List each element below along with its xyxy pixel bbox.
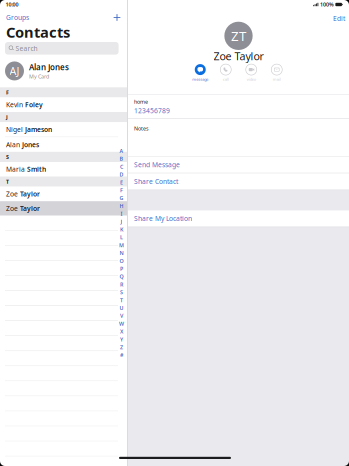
staticText: AJ <box>9 64 19 78</box>
staticText: U <box>119 304 123 311</box>
staticText: Alan <box>6 140 22 149</box>
button[interactable]: Maria <box>0 162 127 176</box>
staticText: G <box>119 194 123 202</box>
staticText: O <box>119 257 123 264</box>
button[interactable]: Alan <box>0 137 127 152</box>
staticText: Taylor <box>20 189 40 198</box>
staticText: Share Contact <box>134 177 178 186</box>
staticText: Maria <box>6 165 27 174</box>
staticText: call <box>223 77 229 82</box>
button[interactable]: Zoe <box>0 201 127 216</box>
staticText: Nigel <box>6 125 25 134</box>
staticText: M <box>119 242 124 249</box>
staticText: L <box>120 234 123 241</box>
staticText: B <box>119 155 123 162</box>
staticText: E <box>120 179 123 186</box>
staticText: message <box>192 77 208 82</box>
staticText: Contacts <box>6 22 70 42</box>
button[interactable]: Edit <box>328 13 349 24</box>
staticText: D <box>119 171 123 178</box>
staticText: J <box>120 218 122 225</box>
button[interactable]: Groups <box>0 11 33 24</box>
staticText: Taylor <box>20 204 40 213</box>
staticText: W <box>119 320 124 327</box>
staticText: F <box>6 89 9 96</box>
staticText: Zoe Taylor <box>213 49 263 63</box>
staticText: Jameson <box>25 125 52 134</box>
staticText: J <box>6 114 8 121</box>
button[interactable]: Share My Location <box>128 210 349 227</box>
staticText: Q <box>119 273 123 280</box>
button[interactable]: Zoe <box>0 187 127 201</box>
staticText: V <box>120 312 123 319</box>
staticText: video <box>247 77 256 82</box>
staticText: Kevin <box>6 100 25 109</box>
staticText: S <box>120 289 123 296</box>
button[interactable]: home <box>128 95 349 118</box>
staticText: T <box>6 178 9 185</box>
staticText: Zoe <box>6 204 20 213</box>
staticText: home <box>134 98 148 105</box>
button[interactable]: mail <box>271 64 282 82</box>
staticText: P <box>120 265 123 272</box>
staticText: T <box>120 296 123 304</box>
staticText: Y <box>120 336 123 343</box>
staticText: Jones <box>22 140 39 149</box>
staticText: Send Message <box>134 160 180 169</box>
staticText: Search <box>15 44 37 53</box>
staticText: 10:00 <box>5 1 18 8</box>
button[interactable]: Nigel <box>0 122 127 137</box>
staticText: Groups <box>6 13 29 22</box>
button[interactable]: video <box>246 64 257 82</box>
button[interactable]: Send Message <box>128 157 349 173</box>
staticText: Z <box>120 344 123 351</box>
staticText: ZT <box>231 27 246 45</box>
staticText: Notes <box>134 125 149 132</box>
button[interactable]: message <box>195 64 206 82</box>
button[interactable]: AJ <box>0 55 127 87</box>
staticText: # <box>120 351 123 359</box>
staticText: N <box>119 249 123 256</box>
staticText: S <box>6 153 9 160</box>
staticText: C <box>120 163 123 170</box>
staticText: F <box>120 187 123 194</box>
staticText: K <box>120 226 123 233</box>
button[interactable]: Share Contact <box>128 173 349 190</box>
staticText: X <box>120 328 123 335</box>
button[interactable]: Kevin <box>0 97 127 112</box>
staticText: 123456789 <box>134 106 170 115</box>
staticText: I <box>120 210 122 217</box>
staticText: H <box>119 202 123 209</box>
staticText: Share My Location <box>134 214 192 223</box>
button[interactable]: call <box>220 64 231 82</box>
staticText: A <box>119 147 123 154</box>
staticText: Zoe <box>6 189 20 198</box>
staticText: R <box>120 281 123 288</box>
staticText: Alan Jones <box>29 62 69 72</box>
staticText: My Card <box>29 73 49 80</box>
staticText: 100% <box>320 1 334 8</box>
staticText: Foley <box>25 100 43 109</box>
staticText: Smith <box>27 165 46 174</box>
staticText: Edit <box>333 14 345 23</box>
button[interactable]: Add Contact <box>110 11 124 24</box>
staticText: mail <box>273 77 281 82</box>
